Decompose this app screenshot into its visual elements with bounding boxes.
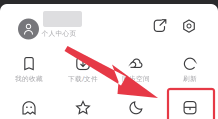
button[interactable]: 我的星标	[58, 99, 108, 119]
button[interactable]: Share	[151, 17, 168, 34]
staticText: 下载/文件	[68, 74, 98, 83]
button[interactable]: 我的收藏	[4, 55, 54, 83]
button[interactable]: 无痕模式	[4, 99, 54, 119]
button[interactable]: 同步空间	[111, 55, 161, 83]
button[interactable]: 夜间模式	[111, 99, 161, 119]
staticText: 同步空间	[122, 75, 150, 83]
button[interactable]: 个人中心页	[18, 15, 92, 43]
staticText: 个人中心页	[41, 29, 76, 38]
button[interactable]: Settings	[180, 17, 197, 34]
staticText: 刷新	[183, 75, 197, 83]
button[interactable]: 下载/文件	[58, 55, 108, 83]
button[interactable]: 刷新	[165, 55, 215, 83]
button[interactable]: 我的钱包	[165, 99, 215, 119]
staticText: 我的收藏	[15, 75, 43, 83]
